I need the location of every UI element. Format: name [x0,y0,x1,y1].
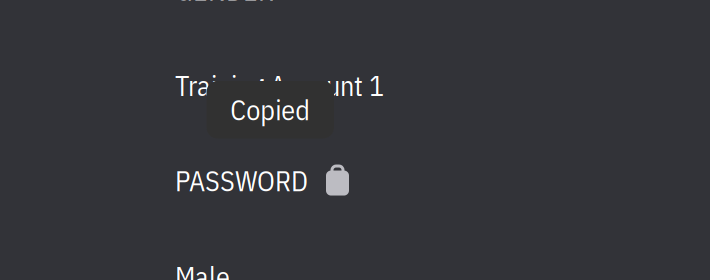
staticText: Male [175,258,230,280]
staticText: Training Account 1 [175,67,384,104]
staticText: GENDER [175,0,274,8]
staticText: Copied [230,91,310,128]
staticText: PASSWORD [175,163,308,199]
button[interactable]: PASSWORD [175,163,349,199]
